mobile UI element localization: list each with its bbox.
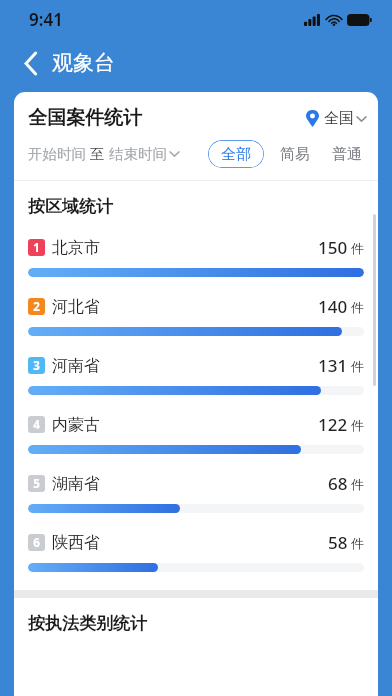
staticText: 1 xyxy=(33,240,40,256)
staticText: 简易 xyxy=(280,145,310,164)
staticText: 河北省 xyxy=(52,297,100,317)
staticText: 件 xyxy=(351,476,364,492)
button[interactable]: 开始时间 xyxy=(28,145,179,163)
staticText: 按区域统计 xyxy=(28,196,113,217)
staticText: 全国 xyxy=(324,109,354,128)
staticText: 全部 xyxy=(221,145,251,164)
button[interactable]: Back xyxy=(14,46,48,80)
button[interactable]: 2 xyxy=(14,285,378,344)
staticText: 普通 xyxy=(332,145,362,164)
button[interactable]: 全国 xyxy=(306,109,366,128)
staticText: 观象台 xyxy=(52,50,115,76)
staticText: 5 xyxy=(33,476,40,492)
staticText: 结束时间 xyxy=(109,145,167,163)
staticText: 131 xyxy=(318,354,348,377)
button[interactable]: 简易 xyxy=(276,141,314,168)
staticText: 件 xyxy=(351,358,364,374)
staticText: 内蒙古 xyxy=(52,415,100,435)
staticText: 件 xyxy=(351,535,364,551)
staticText: 湖南省 xyxy=(52,474,100,494)
staticText: 陕西省 xyxy=(52,533,100,553)
staticText: 河南省 xyxy=(52,356,100,376)
staticText: 68 xyxy=(328,472,348,495)
staticText: 9:41 xyxy=(29,8,63,31)
staticText: 150 xyxy=(318,236,348,259)
button[interactable]: 6 xyxy=(14,521,378,580)
staticText: 3 xyxy=(33,358,40,374)
staticText: 按执法类别统计 xyxy=(28,613,147,634)
staticText: 122 xyxy=(318,413,348,436)
button[interactable]: 全部 xyxy=(208,140,264,168)
button[interactable]: 普通 xyxy=(328,141,366,168)
staticText: 开始时间 xyxy=(28,145,86,163)
staticText: 北京市 xyxy=(52,238,100,258)
button[interactable]: 1 xyxy=(14,226,378,285)
staticText: 件 xyxy=(351,299,364,315)
button[interactable]: 4 xyxy=(14,403,378,462)
staticText: 140 xyxy=(318,295,348,318)
staticText: 6 xyxy=(33,535,40,551)
staticText: 全国案件统计 xyxy=(28,106,142,130)
staticText: 件 xyxy=(351,417,364,433)
button[interactable]: 3 xyxy=(14,344,378,403)
staticText: 4 xyxy=(33,417,40,433)
staticText: 2 xyxy=(33,299,40,315)
staticText: 件 xyxy=(351,240,364,256)
button[interactable]: 5 xyxy=(14,462,378,521)
staticText: 至 xyxy=(90,145,105,163)
staticText: 58 xyxy=(328,531,348,554)
